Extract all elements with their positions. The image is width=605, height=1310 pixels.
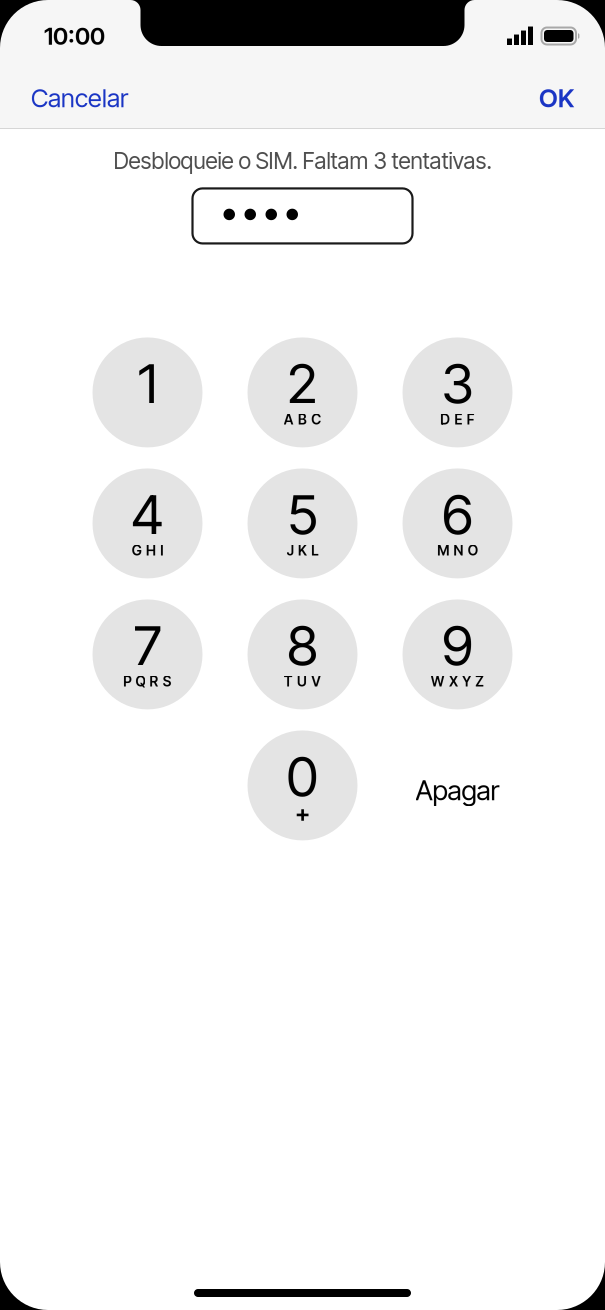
button[interactable]: 4 [92, 468, 202, 578]
staticText: Desbloqueie o SIM. Faltam 3 tentativas. [113, 147, 491, 174]
staticText: 6 [442, 481, 473, 547]
staticText: X [449, 673, 458, 690]
staticText: T [284, 673, 293, 690]
staticText: Apagar [415, 774, 499, 807]
staticText: 8 [287, 612, 318, 678]
staticText: N [453, 542, 463, 559]
staticText: Cancelar [31, 83, 128, 113]
staticText: OK [539, 83, 574, 113]
staticText: C [311, 411, 321, 428]
staticText: F [467, 411, 475, 428]
staticText: 7 [133, 612, 161, 678]
staticText: L [311, 542, 318, 559]
staticText: 2 [287, 350, 318, 416]
button[interactable]: 7 [92, 599, 202, 709]
button[interactable]: 2 [247, 337, 357, 447]
staticText: 3 [441, 350, 473, 416]
button[interactable]: 8 [247, 599, 357, 709]
staticText: Z [475, 673, 484, 690]
staticText: A [284, 411, 294, 428]
staticText: 1 [138, 350, 157, 416]
staticText: K [298, 542, 307, 559]
button[interactable]: 6 [402, 468, 512, 578]
staticText: 4 [131, 481, 164, 547]
staticText: M [437, 542, 449, 559]
button[interactable]: Cancelar [31, 83, 128, 113]
button[interactable]: 0 [247, 730, 357, 840]
staticText: 9 [442, 612, 473, 678]
staticText: J [287, 542, 294, 559]
staticText: I [160, 542, 163, 559]
button[interactable]: OK [539, 83, 574, 113]
staticText: 10:00 [44, 21, 105, 50]
staticText: E [454, 411, 462, 428]
staticText: P [123, 673, 131, 690]
button[interactable]: 3 [402, 337, 512, 447]
button[interactable]: 9 [402, 599, 512, 709]
staticText: R [150, 673, 159, 690]
staticText: Y [462, 673, 471, 690]
staticText: 5 [287, 481, 317, 547]
staticText: W [431, 673, 445, 690]
button[interactable]: Apagar [402, 730, 512, 840]
button[interactable]: 1 [92, 337, 202, 447]
staticText: S [163, 673, 172, 690]
staticText: B [298, 411, 307, 428]
staticText: Q [135, 673, 145, 690]
staticText: + [295, 799, 310, 828]
button[interactable]: 5 [247, 468, 357, 578]
staticText: 0 [286, 743, 318, 809]
staticText: G [132, 542, 142, 559]
staticText: D [440, 411, 450, 428]
staticText: O [468, 542, 478, 559]
staticText: U [297, 673, 307, 690]
staticText: V [311, 673, 321, 690]
staticText: H [146, 542, 156, 559]
